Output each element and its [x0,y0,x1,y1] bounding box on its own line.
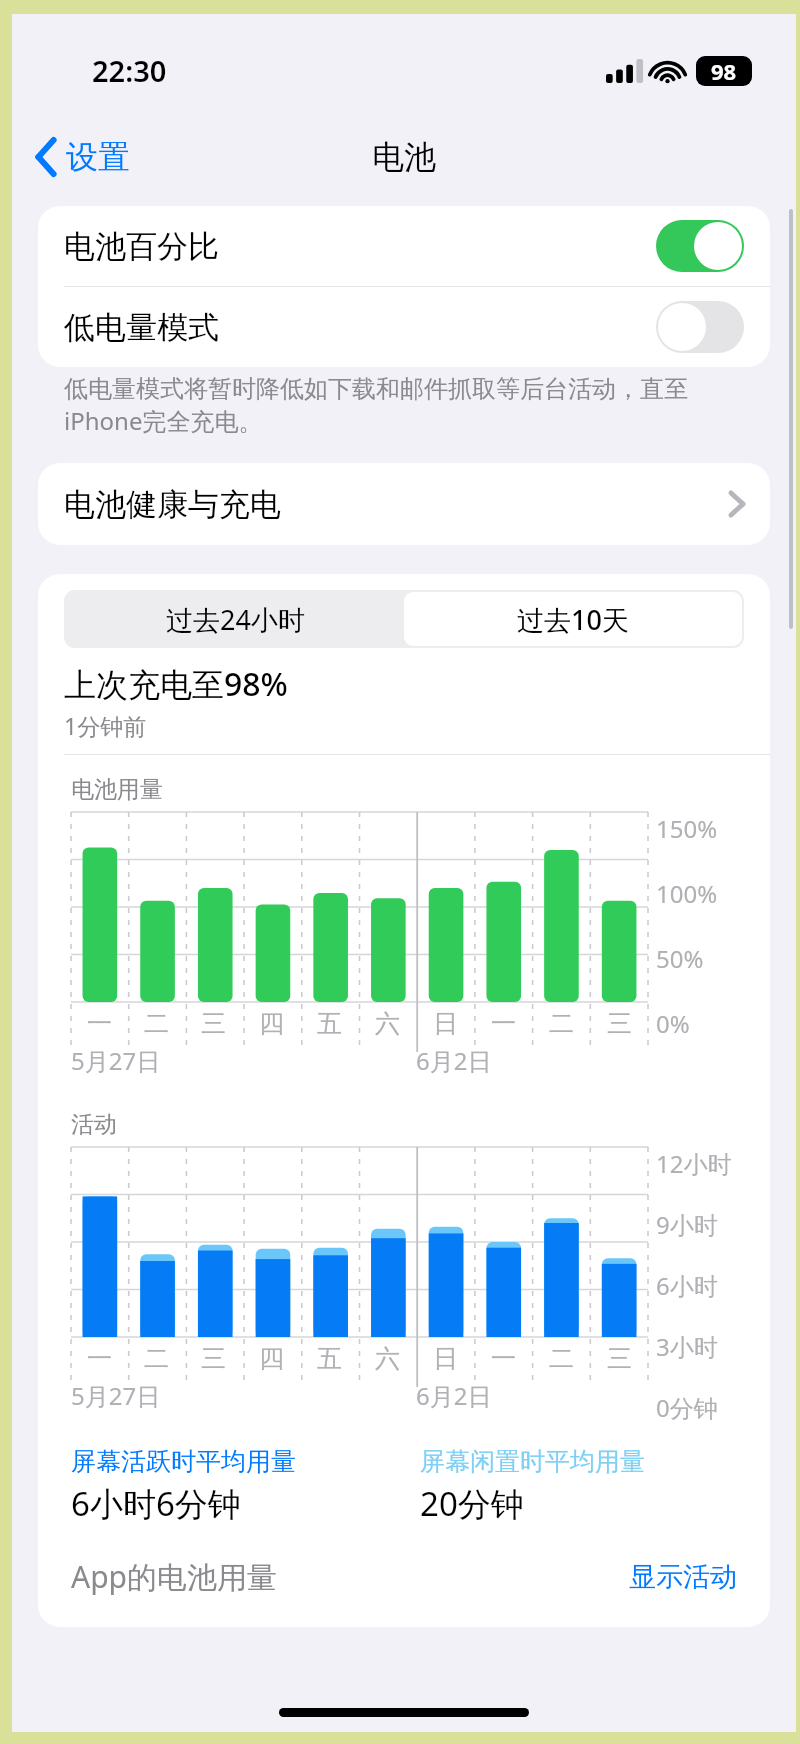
staticText: 三 [201,1343,226,1374]
staticText: 六 [375,1008,400,1039]
button[interactable]: 电池健康与充电 [38,463,770,545]
staticText: 1分钟前 [64,710,147,741]
staticText: 6小时6分钟 [71,1481,241,1526]
staticText: 150% [656,812,718,845]
staticText: 22:30 [92,51,167,90]
staticText: 三 [607,1008,632,1039]
staticText: 电池健康与充电 [64,485,281,524]
staticText: 五 [317,1343,342,1374]
staticText: 上次充电至98% [64,662,288,706]
staticText: 电池用量 [71,775,163,804]
staticText: 二 [549,1343,574,1374]
staticText: 一 [87,1008,112,1039]
staticText: 6小时 [656,1269,718,1302]
staticText: 6月2日 [416,1044,492,1077]
staticText: 20分钟 [420,1481,524,1526]
staticText: 0分钟 [656,1391,718,1424]
staticText: 日 [433,1008,458,1039]
staticText: 日 [433,1343,458,1374]
staticText: 三 [607,1343,632,1374]
staticText: App的电池用量 [71,1556,278,1597]
staticText: 设置 [66,137,130,177]
staticText: 三 [201,1008,226,1039]
staticText: 5月27日 [71,1379,161,1412]
button[interactable]: 显示活动 [629,1560,737,1594]
staticText: 50% [656,942,704,975]
staticText: 12小时 [656,1147,732,1180]
staticText: 5月27日 [71,1044,161,1077]
staticText: 四 [259,1008,284,1039]
staticText: 一 [87,1343,112,1374]
staticText: 6月2日 [416,1379,492,1412]
staticText: 活动 [71,1110,117,1139]
button[interactable]: 电池百分比 [38,206,770,286]
staticText: 六 [375,1343,400,1374]
staticText: 一 [491,1343,516,1374]
button[interactable]: 过去24小时 [66,592,404,646]
button[interactable]: 设置 [30,131,136,183]
staticText: 过去10天 [517,601,629,638]
staticText: 五 [317,1008,342,1039]
staticText: 四 [259,1343,284,1374]
staticText: 二 [144,1008,169,1039]
staticText: 屏幕闲置时平均用量 [420,1446,645,1477]
staticText: 低电量模式 [64,308,219,347]
staticText: 98 [711,56,737,86]
staticText: 屏幕活跃时平均用量 [71,1446,296,1477]
staticText: 低电量模式将暂时降低如下载和邮件抓取等后台活动，直至 iPhone完全充电。 [64,374,688,437]
button[interactable]: 过去10天 [404,592,742,646]
staticText: 一 [491,1008,516,1039]
staticText: 9小时 [656,1208,718,1241]
staticText: 二 [549,1008,574,1039]
staticText: 二 [144,1343,169,1374]
button[interactable]: 低电量模式 [38,287,770,367]
staticText: 100% [656,877,718,910]
staticText: 电池 [372,137,436,177]
staticText: 0% [656,1007,690,1040]
staticText: 3小时 [656,1330,718,1363]
staticText: 电池百分比 [64,227,219,266]
staticText: 过去24小时 [166,601,305,638]
